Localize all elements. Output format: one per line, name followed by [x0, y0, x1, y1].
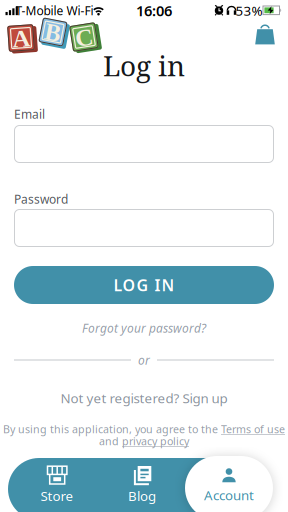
staticText: Forgot your password? — [82, 320, 206, 336]
staticText: and — [99, 434, 122, 448]
staticText: or — [138, 352, 150, 368]
button[interactable]: Account — [204, 467, 254, 504]
staticText: Terms of use — [221, 422, 285, 436]
button[interactable]: Blog — [128, 465, 156, 505]
staticText: 53% — [235, 2, 262, 19]
staticText: Log in — [103, 46, 185, 84]
staticText: 16:06 — [136, 1, 172, 20]
staticText: privacy policy — [122, 434, 189, 448]
staticText: Store — [40, 487, 73, 505]
staticText: By using this application, you agree to … — [3, 422, 221, 436]
button[interactable]: Forgot your password? — [82, 320, 206, 336]
button[interactable]: LOG IN — [14, 266, 274, 304]
button[interactable]: Store — [40, 465, 73, 505]
staticText: C — [75, 24, 93, 51]
staticText: Password — [14, 191, 68, 207]
staticText: Email — [14, 106, 45, 122]
staticText: Blog — [128, 487, 156, 505]
button[interactable]: Sign up — [182, 389, 227, 407]
staticText: LOG IN — [113, 274, 174, 296]
staticText: B — [45, 19, 61, 46]
button[interactable]: privacy policy — [122, 434, 189, 448]
staticText: Not yet registered? — [60, 389, 182, 407]
staticText: T-Mobile Wi-Fi — [15, 2, 93, 18]
button[interactable]: Cart — [254, 23, 276, 45]
staticText: Account — [204, 486, 254, 504]
staticText: A — [12, 25, 30, 52]
button[interactable]: Terms of use — [221, 422, 285, 436]
staticText: Sign up — [182, 389, 227, 407]
